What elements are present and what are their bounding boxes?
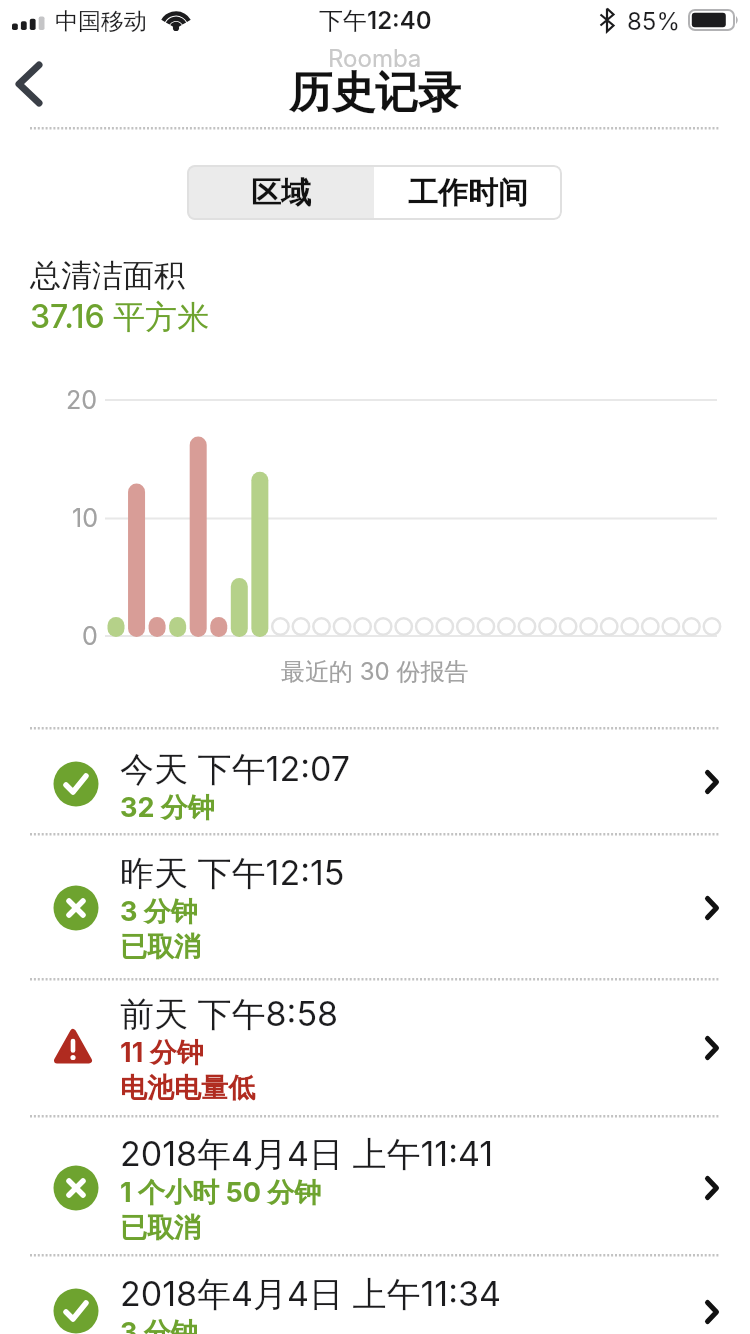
staticText: 85% bbox=[627, 7, 681, 36]
staticText: 区域 bbox=[251, 174, 311, 212]
staticText: 下午12:40 bbox=[319, 6, 432, 36]
staticText: 总清洁面积 bbox=[30, 256, 185, 295]
button[interactable] bbox=[0, 1255, 750, 1334]
staticText: 2018年4月4日 上午11:41 bbox=[120, 1133, 494, 1176]
staticText: 历史记录 bbox=[289, 66, 461, 120]
button[interactable] bbox=[3, 56, 55, 112]
button[interactable] bbox=[0, 834, 750, 977]
staticText: 2018年4月4日 上午11:34 bbox=[120, 1273, 501, 1316]
staticText: 10 bbox=[72, 503, 98, 533]
staticText: 0 bbox=[82, 621, 98, 651]
button[interactable] bbox=[0, 728, 750, 832]
button[interactable] bbox=[0, 1116, 750, 1253]
staticText: 昨天 下午12:15 bbox=[120, 852, 345, 895]
staticText: 20 bbox=[66, 385, 98, 415]
staticText: 中国移动 bbox=[55, 7, 147, 36]
staticText: 3 分钟 bbox=[120, 895, 198, 929]
staticText: 最近的 30 份报告 bbox=[281, 657, 469, 687]
button[interactable]: 区域 bbox=[187, 165, 374, 220]
staticText: 已取消 bbox=[120, 930, 201, 964]
staticText: 11 分钟 bbox=[120, 1036, 204, 1070]
button[interactable] bbox=[0, 979, 750, 1114]
staticText: 32 分钟 bbox=[120, 791, 215, 825]
staticText: 前天 下午8:58 bbox=[120, 993, 339, 1036]
staticText: 电池电量低 bbox=[120, 1071, 255, 1105]
staticText: 已取消 bbox=[120, 1211, 201, 1245]
staticText: Roomba bbox=[328, 44, 422, 73]
staticText: 1 个小时 50 分钟 bbox=[120, 1176, 322, 1210]
staticText: 37.16 平方米 bbox=[30, 297, 210, 338]
staticText: 今天 下午12:07 bbox=[120, 748, 350, 791]
staticText: 3 分钟 bbox=[120, 1316, 198, 1334]
button[interactable]: 工作时间 bbox=[374, 165, 562, 220]
staticText: 工作时间 bbox=[408, 174, 528, 212]
